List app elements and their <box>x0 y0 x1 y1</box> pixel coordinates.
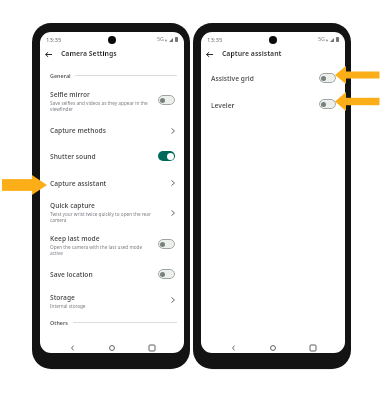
button[interactable]: Off <box>158 269 175 279</box>
button[interactable]: Recent apps <box>146 342 158 353</box>
button[interactable]: Home <box>267 342 279 353</box>
staticText: Save location <box>50 270 93 279</box>
button[interactable]: Navigate up <box>202 47 216 61</box>
button[interactable]: Quick capture <box>40 196 184 227</box>
button[interactable]: Back <box>227 342 239 353</box>
button[interactable]: Assistive grid <box>201 66 345 92</box>
staticText: Leveler <box>211 101 235 110</box>
button[interactable]: Open <box>165 178 175 188</box>
button[interactable]: Navigate up <box>41 47 55 61</box>
button[interactable]: Open <box>165 126 175 136</box>
staticText: Twist your wrist twice quickly to open t… <box>50 211 153 224</box>
button[interactable]: Off <box>158 239 175 249</box>
button[interactable]: Selfie mirror <box>40 85 184 117</box>
button[interactable]: Off <box>319 99 336 109</box>
button[interactable]: Off <box>158 95 175 105</box>
staticText: Camera Settings <box>61 49 117 58</box>
staticText: 13:35 <box>46 36 62 44</box>
staticText: Internal storage <box>50 303 86 309</box>
staticText: Assistive grid <box>211 74 254 83</box>
button[interactable]: Off <box>319 73 336 83</box>
staticText: Capture assistant <box>222 49 282 58</box>
button[interactable]: Leveler <box>201 93 345 119</box>
staticText: Others <box>50 319 69 326</box>
button[interactable]: Keep last mode <box>40 227 184 258</box>
staticText: Selfie mirror <box>50 90 90 99</box>
button[interactable]: Storage <box>40 287 184 311</box>
button[interactable]: Save location <box>40 262 184 287</box>
staticText: 13:35 <box>207 36 223 44</box>
button[interactable]: Capture assistant <box>40 170 184 196</box>
button[interactable]: Capture methods <box>40 119 184 144</box>
staticText: Capture methods <box>50 126 106 135</box>
staticText: Keep last mode <box>50 234 100 243</box>
staticText: General <box>50 72 71 79</box>
button[interactable]: Back <box>66 342 78 353</box>
button[interactable]: Open <box>165 295 175 305</box>
button[interactable]: Open <box>165 208 175 218</box>
staticText: Capture assistant <box>50 179 107 188</box>
button[interactable]: On <box>158 151 175 161</box>
staticText: Shutter sound <box>50 152 96 161</box>
staticText: 5G <box>318 35 326 42</box>
button[interactable]: Recent apps <box>307 342 319 353</box>
button[interactable]: Home <box>106 342 118 353</box>
staticText: Open the camera with the last used mode … <box>50 244 153 257</box>
staticText: 5G <box>157 35 165 42</box>
staticText: Save selfies and videos as they appear i… <box>50 100 153 113</box>
staticText: Quick capture <box>50 201 95 210</box>
button[interactable]: Shutter sound <box>40 144 184 170</box>
staticText: Storage <box>50 293 75 302</box>
